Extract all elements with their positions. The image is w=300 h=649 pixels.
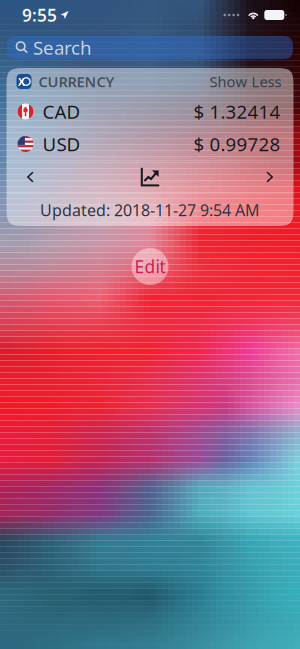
staticText: CURRENCY [38,72,114,91]
staticText: $ 0.99728 [193,132,280,156]
staticText: X [18,74,25,89]
staticText: USD [42,132,80,156]
button[interactable]: Chart [128,160,172,193]
button[interactable]: Search [7,36,293,59]
button[interactable]: USD [6,128,293,160]
staticText: Edit [134,255,165,278]
staticText: 9:55 [22,3,57,26]
staticText: Updated: 2018-11-27 9:54 AM [40,199,260,221]
button[interactable]: Next currency [247,160,291,193]
button[interactable]: CAD [6,95,293,127]
staticText: Search [33,35,92,60]
button[interactable]: Previous currency [8,160,52,193]
staticText: CAD [42,99,80,124]
staticText: Show Less [209,72,281,91]
button[interactable]: X [6,68,293,95]
button[interactable]: Edit [131,248,168,285]
staticText: $ 1.32414 [193,99,280,124]
